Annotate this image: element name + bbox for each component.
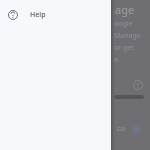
staticText: Manage [114, 31, 141, 41]
button[interactable]: Help [0, 4, 111, 26]
staticText: oogle [114, 19, 133, 29]
button[interactable]: Storage info [133, 80, 143, 90]
staticText: age [115, 2, 135, 17]
button[interactable]: Open storage details [133, 126, 140, 133]
staticText: or get [114, 43, 134, 53]
staticText: GB [117, 125, 126, 133]
staticText: Help [30, 10, 46, 20]
staticText: e. [114, 55, 120, 65]
